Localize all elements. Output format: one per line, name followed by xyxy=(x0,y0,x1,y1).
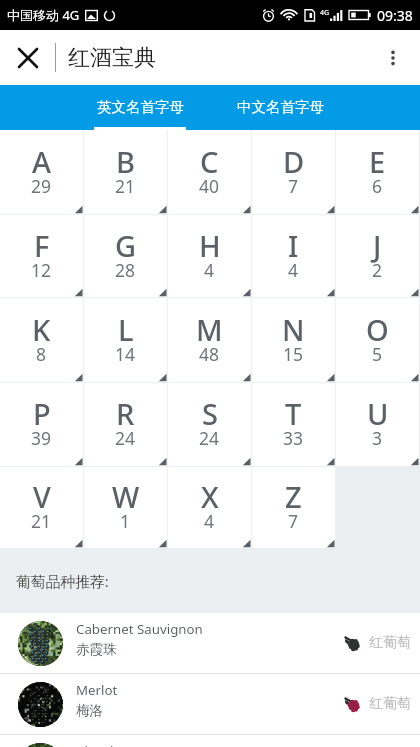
button[interactable]: O xyxy=(336,298,419,382)
staticText: D xyxy=(283,142,305,181)
button[interactable]: H xyxy=(168,215,251,297)
button[interactable]: A xyxy=(0,130,83,214)
button[interactable]: R xyxy=(84,383,167,466)
button[interactable]: Chardonnay xyxy=(0,735,420,747)
button[interactable]: C xyxy=(168,130,251,214)
staticText: 4 xyxy=(204,509,215,533)
staticText: 3 xyxy=(372,426,383,450)
staticText: 英文名首字母 xyxy=(97,98,184,116)
staticText: 红葡萄 xyxy=(369,695,411,713)
button[interactable]: P xyxy=(0,383,83,466)
staticText: 葡萄品种推荐: xyxy=(16,571,109,591)
button[interactable]: S xyxy=(168,383,251,466)
button[interactable]: U xyxy=(336,383,419,466)
staticText: 21 xyxy=(115,174,136,198)
staticText: Chardonnay xyxy=(76,742,153,747)
button[interactable]: V xyxy=(0,467,83,548)
staticText: 14 xyxy=(115,342,136,366)
staticText: 5 xyxy=(372,342,383,366)
staticText: U xyxy=(367,394,389,433)
staticText: 梅洛 xyxy=(76,702,104,719)
staticText: J xyxy=(373,226,382,265)
staticText: T xyxy=(285,394,302,433)
staticText: H xyxy=(199,226,221,265)
button[interactable]: T xyxy=(252,383,335,466)
button[interactable]: E xyxy=(336,130,419,214)
staticText: A xyxy=(32,142,51,181)
staticText: 6 xyxy=(372,174,383,198)
staticText: M xyxy=(196,310,223,349)
button[interactable]: W xyxy=(84,467,167,548)
staticText: 39 xyxy=(31,426,52,450)
staticText: 赤霞珠 xyxy=(76,641,117,658)
button[interactable]: 中文名首字母 xyxy=(210,85,350,130)
staticText: W xyxy=(112,477,140,516)
staticText: I xyxy=(288,226,299,265)
button[interactable]: K xyxy=(0,298,83,382)
staticText: 8 xyxy=(36,342,47,366)
staticText: 4 xyxy=(288,258,299,282)
staticText: 红酒宝典 xyxy=(68,44,156,72)
staticText: E xyxy=(369,142,386,181)
button[interactable]: F xyxy=(0,215,83,297)
staticText: 4G xyxy=(320,8,330,18)
button[interactable]: More options xyxy=(365,30,420,85)
staticText: 红葡萄 xyxy=(369,634,411,652)
button[interactable]: Z xyxy=(252,467,335,548)
staticText: L xyxy=(118,310,134,349)
staticText: 1 xyxy=(120,509,131,533)
button[interactable]: Close xyxy=(0,30,55,85)
button[interactable]: X xyxy=(168,467,251,548)
staticText: K xyxy=(32,310,51,349)
staticText: Merlot xyxy=(76,681,118,699)
staticText: 33 xyxy=(283,426,304,450)
staticText: P xyxy=(33,394,51,433)
button[interactable]: N xyxy=(252,298,335,382)
button[interactable]: Merlot xyxy=(0,674,420,734)
staticText: V xyxy=(33,477,51,516)
staticText: 15 xyxy=(283,342,304,366)
button[interactable]: D xyxy=(252,130,335,214)
button[interactable]: 英文名首字母 xyxy=(70,85,210,130)
staticText: X xyxy=(201,477,219,516)
button[interactable]: I xyxy=(252,215,335,297)
staticText: 4 xyxy=(204,258,215,282)
button[interactable]: Cabernet Sauvignon xyxy=(0,613,420,673)
staticText: 24 xyxy=(115,426,136,450)
staticText: 09:38 xyxy=(377,6,413,25)
staticText: 中国移动 4G xyxy=(7,6,80,24)
staticText: 2 xyxy=(372,258,383,282)
button[interactable]: L xyxy=(84,298,167,382)
staticText: G xyxy=(115,226,137,265)
staticText: 48 xyxy=(199,342,220,366)
staticText: 中文名首字母 xyxy=(237,98,324,116)
staticText: R xyxy=(116,394,135,433)
staticText: 7 xyxy=(288,509,299,533)
staticText: 21 xyxy=(31,509,52,533)
staticText: Z xyxy=(285,477,302,516)
staticText: 24 xyxy=(199,426,220,450)
staticText: 12 xyxy=(31,258,52,282)
staticText: 28 xyxy=(115,258,136,282)
staticText: Cabernet Sauvignon xyxy=(76,620,203,638)
staticText: C xyxy=(200,142,219,181)
staticText: 7 xyxy=(288,174,299,198)
staticText: F xyxy=(34,226,50,265)
staticText: 40 xyxy=(199,174,220,198)
staticText: B xyxy=(116,142,135,181)
button[interactable]: J xyxy=(336,215,419,297)
staticText: O xyxy=(366,310,389,349)
button[interactable]: M xyxy=(168,298,251,382)
staticText: N xyxy=(282,310,305,349)
staticText: S xyxy=(202,394,218,433)
button[interactable]: G xyxy=(84,215,167,297)
staticText: 29 xyxy=(31,174,52,198)
button[interactable]: B xyxy=(84,130,167,214)
